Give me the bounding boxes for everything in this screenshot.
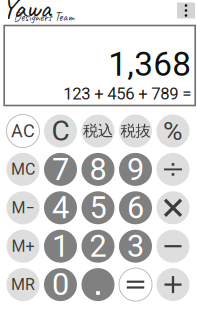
button[interactable]: AC bbox=[6, 114, 39, 147]
staticText: % bbox=[163, 115, 183, 147]
button[interactable]: More options bbox=[177, 2, 195, 18]
staticText: Yawa bbox=[1, 0, 50, 26]
button[interactable]: C bbox=[44, 114, 77, 147]
button[interactable]: Multiply bbox=[156, 191, 189, 224]
staticText: 5 bbox=[89, 190, 106, 226]
staticText: 0 bbox=[52, 267, 69, 302]
staticText: 9 bbox=[127, 151, 144, 187]
button[interactable]: 1 bbox=[44, 230, 77, 263]
button[interactable]: M− bbox=[6, 191, 39, 224]
button[interactable]: 8 bbox=[81, 153, 114, 186]
staticText: 2 bbox=[89, 228, 106, 264]
staticText: 4 bbox=[52, 190, 69, 226]
staticText: MR bbox=[11, 275, 35, 294]
staticText: 3 bbox=[127, 228, 144, 264]
button[interactable]: 7 bbox=[44, 153, 77, 186]
button[interactable]: % bbox=[156, 114, 189, 147]
staticText: 7 bbox=[52, 151, 69, 187]
staticText: 税込 bbox=[83, 121, 113, 141]
button[interactable]: Divide bbox=[156, 153, 189, 186]
button[interactable]: 5 bbox=[81, 191, 114, 224]
staticText: 8 bbox=[89, 151, 106, 187]
staticText: 1,368 bbox=[108, 45, 191, 84]
button[interactable]: 4 bbox=[44, 191, 77, 224]
staticText: AC bbox=[11, 120, 35, 142]
staticText: 123 + 456 + 789 = bbox=[63, 84, 191, 103]
button[interactable]: 税抜 bbox=[119, 114, 152, 147]
button[interactable]: Equals bbox=[119, 268, 152, 301]
staticText: 1 bbox=[52, 228, 69, 264]
button[interactable]: 3 bbox=[119, 230, 152, 263]
button[interactable]: MR bbox=[6, 268, 39, 301]
button[interactable]: M+ bbox=[6, 230, 39, 263]
staticText: M− bbox=[11, 198, 34, 217]
button[interactable]: Decimal point bbox=[81, 268, 114, 301]
button[interactable]: MC bbox=[6, 153, 39, 186]
staticText: MC bbox=[11, 160, 35, 179]
staticText: Designers Team bbox=[13, 9, 74, 24]
button[interactable]: 6 bbox=[119, 191, 152, 224]
button[interactable]: 2 bbox=[81, 230, 114, 263]
button[interactable]: Add bbox=[156, 268, 189, 301]
button[interactable]: 9 bbox=[119, 153, 152, 186]
button[interactable]: 0 bbox=[44, 268, 77, 301]
staticText: M+ bbox=[11, 237, 34, 256]
button[interactable]: 税込 bbox=[81, 114, 114, 147]
button[interactable]: Subtract bbox=[156, 230, 189, 263]
staticText: 6 bbox=[127, 190, 144, 226]
staticText: C bbox=[51, 115, 69, 147]
staticText: 税抜 bbox=[120, 121, 150, 141]
